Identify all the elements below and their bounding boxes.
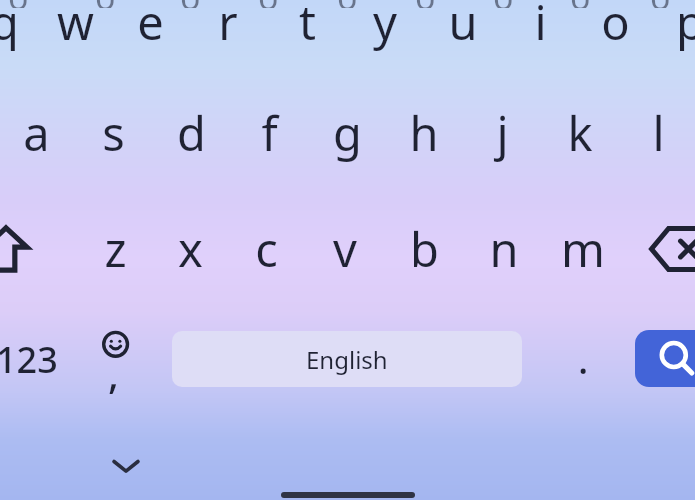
staticText: , [108,346,119,400]
button[interactable]: Shift [0,210,46,288]
staticText: b [410,217,439,281]
staticText: x [178,217,203,281]
button[interactable]: o [554,0,606,8]
button[interactable]: d [154,88,228,178]
button[interactable]: z [78,205,152,293]
staticText: l [652,101,665,165]
button[interactable]: f [232,88,306,178]
staticText: e [137,0,164,54]
staticText: q [0,0,19,54]
button[interactable]: w [40,0,110,59]
staticText: o [601,0,630,54]
staticText: f [261,101,278,165]
button[interactable]: j [465,88,539,178]
staticText: w [57,0,94,54]
button[interactable]: u [428,0,498,59]
button[interactable]: c [229,205,303,293]
button[interactable]: English [172,331,522,387]
button[interactable]: s [76,88,150,178]
button[interactable]: a [0,88,73,178]
staticText: z [104,217,127,281]
button[interactable]: o [321,0,373,8]
staticText: p [676,0,695,54]
button[interactable]: y [350,0,420,59]
staticText: o [337,0,358,8]
button[interactable]: 123 [0,325,72,393]
staticText: d [177,101,206,165]
staticText: r [218,0,238,54]
button[interactable]: k [543,88,617,178]
button[interactable]: h [387,88,461,178]
button[interactable]: q [0,0,39,59]
staticText: o [570,0,591,8]
button[interactable]: l [621,88,695,178]
staticText: o [415,0,436,8]
staticText: j [496,101,509,165]
button[interactable]: Hide keyboard [98,440,154,492]
button[interactable]: g [310,88,384,178]
staticText: k [567,101,593,165]
staticText: y [373,0,397,54]
staticText: o [95,0,116,8]
button[interactable]: . [545,331,621,387]
staticText: o [180,0,201,8]
staticText: a [23,101,50,165]
staticText: 123 [0,335,58,384]
button[interactable]: Search [635,330,695,387]
button[interactable]: o [242,0,294,8]
staticText: v [333,217,357,281]
button[interactable]: o [477,0,529,8]
button[interactable]: r [193,0,263,59]
staticText: g [333,101,362,165]
button[interactable]: o [634,0,686,8]
button[interactable]: n [467,205,541,293]
button[interactable]: e [115,0,185,59]
button[interactable]: o [580,0,650,59]
staticText: s [102,101,125,165]
button[interactable]: m [546,205,620,293]
button[interactable]: v [308,205,382,293]
staticText: n [489,217,519,281]
staticText: i [534,0,547,54]
staticText: o [8,0,29,8]
staticText: o [650,0,671,8]
staticText: o [493,0,514,8]
button[interactable]: x [153,205,227,293]
button[interactable]: o [164,0,216,8]
staticText: English [306,343,388,376]
staticText: h [409,101,439,165]
button[interactable]: p [655,0,695,59]
button[interactable]: o [79,0,131,8]
button[interactable]: o [399,0,451,8]
button[interactable]: b [387,205,461,293]
button[interactable]: i [505,0,575,59]
staticText: t [299,0,316,54]
button[interactable]: t [272,0,342,59]
staticText: u [448,0,478,54]
staticText: . [578,333,589,385]
button[interactable]: Emoji [82,322,152,394]
button[interactable]: o [0,0,44,8]
staticText: m [561,217,605,281]
staticText: o [258,0,279,8]
staticText: c [255,217,278,281]
button[interactable]: Backspace [650,212,695,286]
